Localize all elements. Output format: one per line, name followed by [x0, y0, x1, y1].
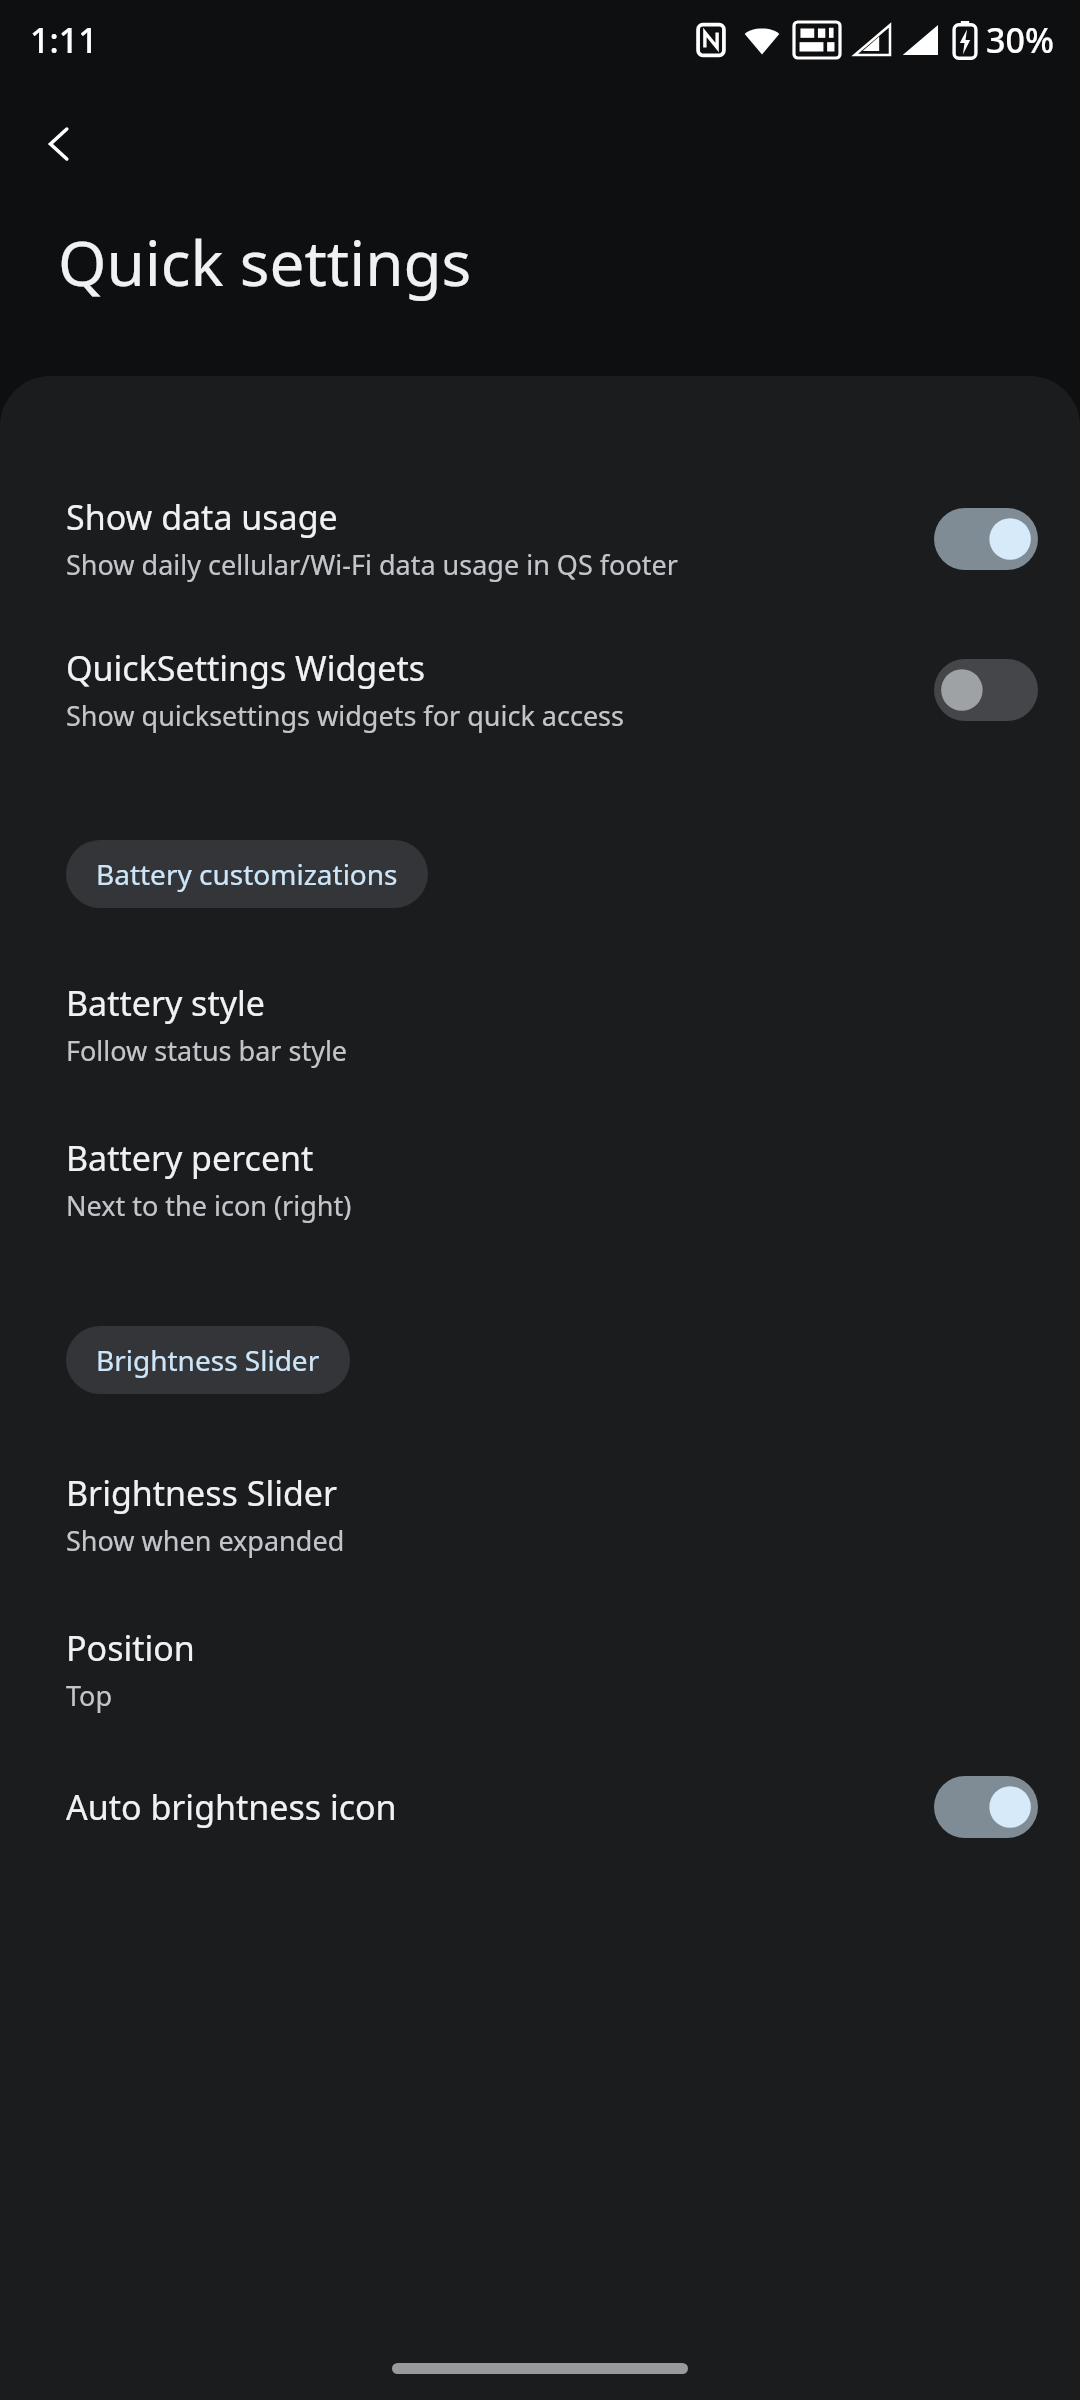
- staticText: Show daily cellular/Wi-Fi data usage in …: [66, 546, 678, 583]
- button[interactable]: Position: [0, 1625, 1080, 1714]
- staticText: 30%: [986, 17, 1054, 63]
- button[interactable]: Toggle on: [934, 508, 1038, 570]
- staticText: QuickSettings Widgets: [66, 645, 425, 691]
- button[interactable]: Brightness Slider: [66, 1326, 350, 1394]
- staticText: Next to the icon (right): [66, 1187, 352, 1224]
- staticText: Top: [66, 1677, 113, 1714]
- staticText: Brightness Slider: [96, 1341, 320, 1379]
- button[interactable]: Show data usage: [0, 494, 1080, 583]
- button[interactable]: Back: [22, 106, 98, 182]
- staticText: Show quicksettings widgets for quick acc…: [66, 697, 624, 734]
- button[interactable]: Brightness Slider: [0, 1470, 1080, 1559]
- staticText: Quick settings: [58, 220, 472, 304]
- staticText: Brightness Slider: [66, 1470, 338, 1516]
- staticText: 1:11: [30, 17, 98, 63]
- staticText: Battery style: [66, 980, 265, 1026]
- staticText: Follow status bar style: [66, 1032, 348, 1069]
- button[interactable]: Toggle on: [934, 1776, 1038, 1838]
- staticText: Show data usage: [66, 494, 338, 540]
- button[interactable]: Battery style: [0, 980, 1080, 1069]
- button[interactable]: Battery percent: [0, 1135, 1080, 1224]
- button[interactable]: QuickSettings Widgets: [0, 645, 1080, 734]
- button[interactable]: Battery customizations: [66, 840, 428, 908]
- staticText: Show when expanded: [66, 1522, 345, 1559]
- button[interactable]: Toggle off: [934, 659, 1038, 721]
- button[interactable]: Auto brightness icon: [0, 1776, 1080, 1838]
- staticText: Auto brightness icon: [66, 1784, 397, 1830]
- staticText: Battery customizations: [96, 855, 398, 893]
- staticText: Battery percent: [66, 1135, 314, 1181]
- staticText: Position: [66, 1625, 195, 1671]
